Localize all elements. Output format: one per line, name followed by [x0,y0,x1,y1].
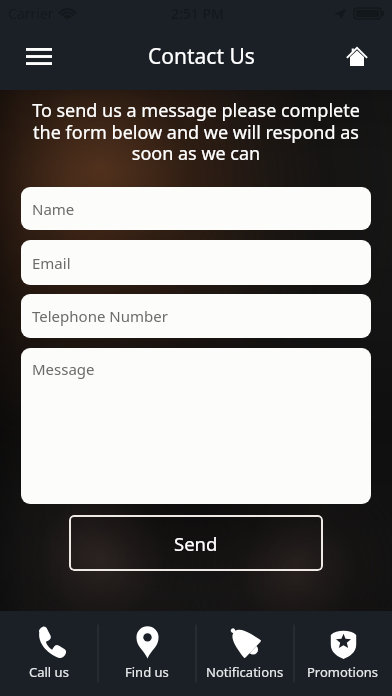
staticText: Call us [29,663,69,681]
button[interactable]: Notifications [196,611,294,696]
staticText: Contact Us [148,42,255,71]
staticText: To send us a message please complete the… [25,98,367,165]
staticText: Email [32,253,71,273]
button[interactable]: Email [21,240,371,285]
button[interactable]: Find us [98,611,196,696]
staticText: 2:51 PM [171,4,224,23]
staticText: Promotions [307,663,379,681]
button[interactable]: Promotions [294,611,392,696]
staticText: Notifications [206,663,284,681]
staticText: Carrier [8,4,54,23]
button[interactable]: Message [21,348,371,504]
staticText: Send [174,531,218,556]
button[interactable]: Call us [0,611,98,696]
staticText: Message [32,359,95,379]
button[interactable]: Telephone Number [21,294,371,338]
button[interactable]: Home [336,26,392,90]
button[interactable]: Send [69,515,323,571]
staticText: Find us [125,663,169,681]
button[interactable]: Name [21,187,371,230]
staticText: Telephone Number [32,306,168,326]
button[interactable]: Menu [0,26,64,90]
staticText: Name [32,199,75,219]
